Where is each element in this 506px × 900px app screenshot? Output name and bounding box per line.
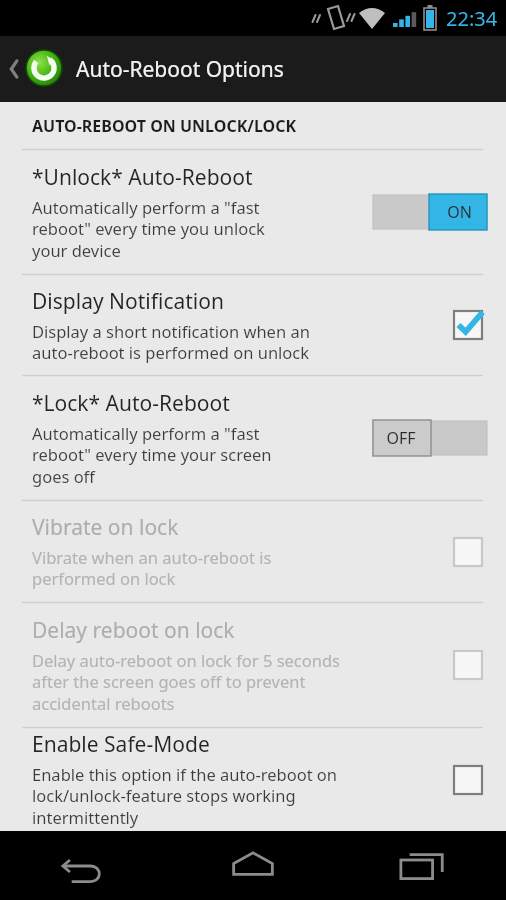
button[interactable]: Display Notification [0, 275, 506, 375]
button[interactable]: Back [0, 831, 168, 900]
staticText: *Lock* Auto-Reboot [32, 389, 230, 418]
staticText: Vibrate on lock [32, 513, 179, 542]
button[interactable]: Home [168, 831, 337, 900]
button[interactable]: *Unlock* Auto-Reboot [0, 150, 506, 274]
staticText: AUTO-REBOOT ON UNLOCK/LOCK [32, 115, 297, 137]
staticText: Enable this option if the auto-reboot on… [32, 763, 338, 829]
button[interactable]: Delay reboot on lock [0, 603, 506, 727]
button[interactable]: Not checked [444, 756, 492, 804]
staticText: ON [447, 201, 472, 223]
staticText: Enable Safe-Mode [32, 730, 210, 759]
button[interactable]: Not checked [444, 641, 492, 689]
button[interactable]: Vibrate on lock [0, 501, 506, 602]
button[interactable]: Switch off [372, 420, 488, 456]
button[interactable]: Recent apps [337, 831, 506, 900]
staticText: 22:34 [446, 5, 498, 32]
staticText: Delay auto-reboot on lock for 5 seconds … [32, 649, 341, 715]
staticText: *Unlock* Auto-Reboot [32, 163, 253, 192]
button[interactable]: *Lock* Auto-Reboot [0, 376, 506, 500]
staticText: OFF [386, 427, 416, 449]
button[interactable]: Not checked [444, 528, 492, 576]
staticText: Automatically perform a "fast reboot" ev… [32, 196, 265, 262]
button[interactable]: Switch on [372, 194, 488, 230]
button[interactable]: Enable Safe-Mode [0, 728, 506, 831]
staticText: Delay reboot on lock [32, 616, 235, 645]
staticText: Automatically perform a "fast reboot" ev… [32, 422, 272, 488]
staticText: Display a short notification when an aut… [32, 320, 310, 364]
staticText: Auto-Reboot Options [76, 55, 284, 84]
staticText: Vibrate when an auto-reboot is performed… [32, 546, 272, 590]
button[interactable]: Navigate up: Auto-Reboot Options [0, 36, 506, 102]
button[interactable]: Checked [444, 301, 492, 349]
staticText: Display Notification [32, 287, 224, 316]
